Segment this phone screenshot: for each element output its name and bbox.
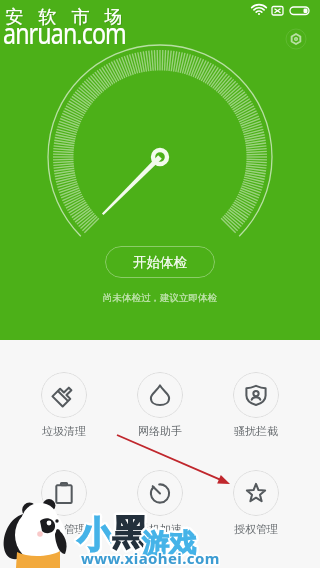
staticText: 开始体检	[133, 254, 187, 271]
staticText: 安软市场	[0, 6, 130, 29]
staticText: 黑	[112, 510, 148, 555]
button[interactable]: 手机加速	[112, 438, 208, 536]
staticText: 黑	[112, 510, 148, 555]
staticText: anruan.com	[3, 13, 126, 52]
staticText: 尚未体检过，建议立即体检	[103, 292, 217, 304]
staticText: 小	[77, 512, 113, 557]
staticText: www.xiaohei.com	[81, 548, 220, 568]
button[interactable]: 省电管理	[16, 438, 112, 536]
staticText: 游戏	[142, 527, 196, 561]
staticText: 省电管理	[42, 522, 86, 536]
staticText: 网络助手	[138, 424, 182, 438]
staticText: 小	[77, 512, 113, 557]
button[interactable]: 垃圾清理	[16, 340, 112, 438]
staticText: 授权管理	[234, 522, 278, 536]
button[interactable]: 骚扰拦截	[208, 340, 304, 438]
staticText: 垃圾清理	[42, 424, 86, 438]
staticText: 安软市场	[0, 7, 131, 30]
button[interactable]: 开始体检	[105, 246, 215, 278]
staticText: 手机加速	[138, 522, 182, 536]
button[interactable]: Settings	[280, 23, 312, 55]
button[interactable]: 网络助手	[112, 340, 208, 438]
staticText: www.xiaohei.com	[81, 548, 220, 568]
button[interactable]: 授权管理	[208, 438, 304, 536]
staticText: 骚扰拦截	[234, 424, 278, 438]
staticText: 游戏	[142, 527, 196, 561]
